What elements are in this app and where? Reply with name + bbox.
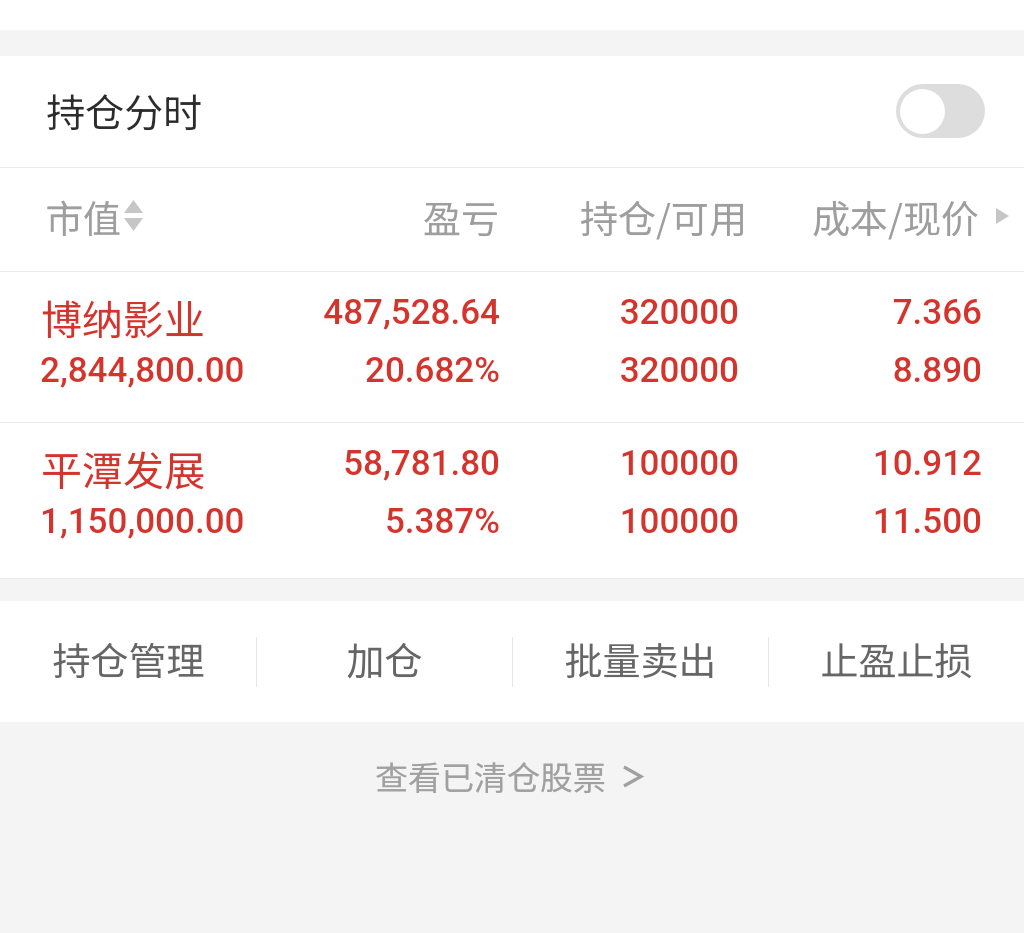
staticText: 盈亏	[422, 189, 499, 244]
staticText: 7.366	[892, 292, 982, 333]
button[interactable]: 加仓	[256, 601, 512, 722]
button[interactable]: More columns	[996, 194, 1024, 238]
staticText: 100000	[619, 501, 739, 542]
button[interactable]: 博纳影业	[0, 272, 1024, 423]
button[interactable]: 市值	[45, 189, 141, 244]
staticText: 加仓	[346, 631, 423, 686]
staticText: 1,150,000.00	[40, 501, 245, 542]
button[interactable]: Toggle intraday view	[896, 84, 985, 138]
button[interactable]: 持仓/可用	[580, 189, 747, 244]
staticText: 5.387%	[384, 501, 500, 542]
button[interactable]: 平潭发展	[0, 423, 1024, 579]
staticText: 成本/现价	[812, 189, 979, 244]
staticText: 11.500	[872, 501, 982, 542]
staticText: 58,781.80	[343, 443, 500, 484]
button[interactable]: 持仓管理	[0, 601, 256, 722]
staticText: 持仓管理	[52, 631, 205, 686]
staticText: 100000	[619, 443, 739, 484]
staticText: 批量卖出	[564, 631, 717, 686]
staticText: 市值	[45, 189, 122, 244]
staticText: 2,844,800.00	[40, 350, 245, 391]
button[interactable]: 盈亏	[422, 189, 499, 244]
button[interactable]: 查看已清仓股票	[375, 752, 641, 800]
staticText: 平潭发展	[41, 438, 205, 497]
staticText: 持仓/可用	[580, 189, 747, 244]
staticText: 止盈止损	[820, 631, 973, 686]
button[interactable]: 成本/现价	[812, 189, 979, 244]
staticText: 查看已清仓股票	[375, 752, 606, 800]
staticText: 8.890	[892, 350, 982, 391]
staticText: 博纳影业	[41, 287, 205, 346]
staticText: 持仓分时	[46, 82, 203, 138]
staticText: 320000	[619, 350, 739, 391]
button[interactable]: 批量卖出	[512, 601, 768, 722]
staticText: 487,528.64	[323, 292, 500, 333]
staticText: 20.682%	[365, 350, 500, 391]
staticText: 320000	[619, 292, 739, 333]
button[interactable]: 止盈止损	[768, 601, 1024, 722]
staticText: 10.912	[872, 443, 982, 484]
